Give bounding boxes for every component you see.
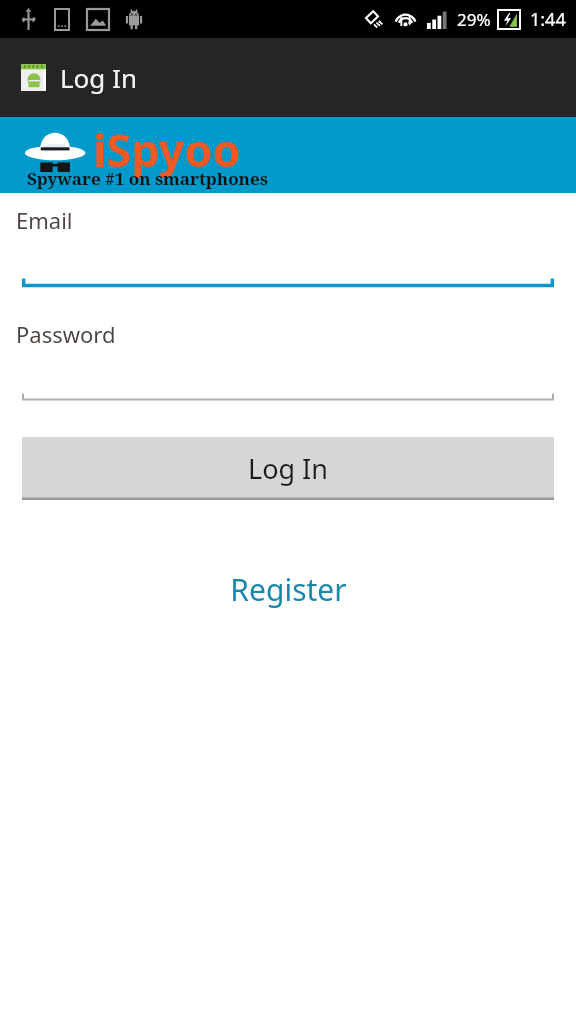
button[interactable]: Password: [0, 319, 576, 404]
staticText: Log In: [60, 60, 137, 95]
staticText: 1:44: [530, 7, 566, 32]
staticText: Log In: [248, 450, 328, 487]
button[interactable]: Register: [212, 563, 365, 616]
staticText: 29%: [457, 8, 491, 31]
staticText: Register: [230, 569, 347, 610]
staticText: Password: [16, 319, 116, 349]
staticText: Email: [16, 205, 73, 235]
button[interactable]: Log In: [22, 437, 554, 500]
staticText: Spyware #1 on smartphones: [27, 167, 268, 190]
button[interactable]: Email: [0, 205, 576, 290]
staticText: iSpyoo: [93, 119, 241, 180]
